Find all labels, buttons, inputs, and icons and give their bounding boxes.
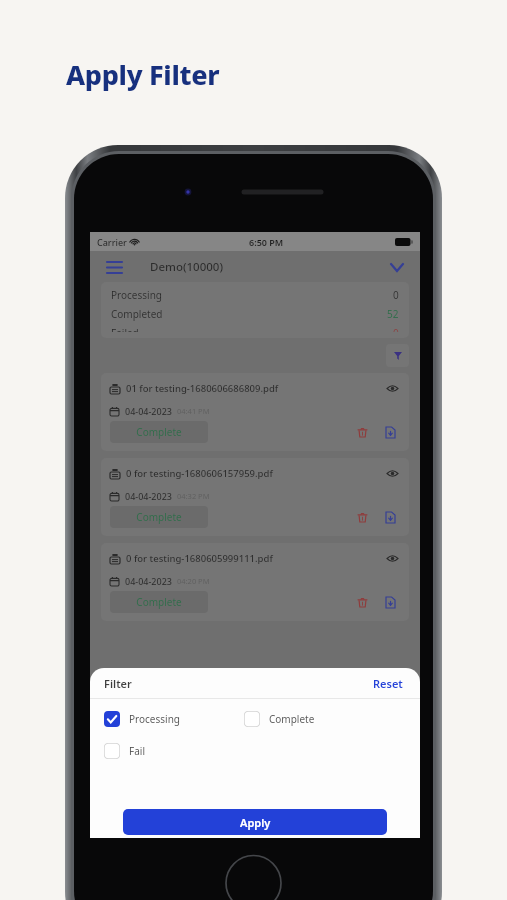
button[interactable]: Fail (104, 743, 214, 759)
staticText: Fail (129, 744, 145, 758)
staticText: Failed (111, 326, 139, 332)
staticText: Apply (240, 815, 271, 830)
button[interactable]: Complete (110, 421, 208, 443)
staticText: Reset (373, 676, 403, 691)
button[interactable]: Complete (110, 506, 208, 528)
button[interactable]: Reset (370, 673, 406, 694)
staticText: Demo(10000) (150, 259, 223, 275)
staticText: 0 (393, 288, 399, 302)
staticText: Carrier (97, 236, 127, 248)
button[interactable]: Delete (354, 424, 370, 440)
staticText: Apply Filter (66, 56, 220, 93)
button[interactable]: Apply (123, 809, 387, 835)
button[interactable]: Filter (386, 344, 409, 367)
staticText: 0 (393, 326, 399, 332)
staticText: 52 (387, 307, 399, 321)
button[interactable]: Open navigation menu (102, 255, 126, 279)
staticText: 04:32 PM (177, 491, 210, 501)
staticText: Complete (136, 425, 182, 439)
staticText: Processing (111, 288, 162, 302)
button[interactable]: Download document (382, 509, 398, 525)
button[interactable]: 0 for testing-1680606157959.pdf (101, 458, 409, 536)
button[interactable]: View document (385, 466, 400, 481)
staticText: Complete (269, 712, 315, 726)
staticText: Filter (104, 676, 132, 691)
staticText: 0 for testing-1680605999111.pdf (126, 552, 273, 565)
button[interactable]: Processing (104, 711, 214, 727)
staticText: 01 for testing-1680606686809.pdf (126, 382, 279, 395)
button[interactable]: Delete (354, 594, 370, 610)
staticText: Complete (136, 595, 182, 609)
staticText: Complete (136, 510, 182, 524)
staticText: 0 for testing-1680606157959.pdf (126, 467, 273, 480)
button[interactable]: View document (385, 381, 400, 396)
button[interactable]: Download document (382, 424, 398, 440)
button[interactable]: Change account (386, 256, 408, 278)
staticText: 04-04-2023 (125, 405, 172, 417)
staticText: Processing (129, 712, 180, 726)
staticText: 04-04-2023 (125, 575, 172, 587)
staticText: Completed (111, 307, 163, 321)
button[interactable]: Complete (244, 711, 354, 727)
staticText: 04:41 PM (177, 406, 210, 416)
staticText: 04-04-2023 (125, 490, 172, 502)
staticText: 04:20 PM (177, 576, 210, 586)
button[interactable]: View document (385, 551, 400, 566)
button[interactable]: Delete (354, 509, 370, 525)
button[interactable]: Complete (110, 591, 208, 613)
button[interactable]: 0 for testing-1680605999111.pdf (101, 543, 409, 621)
staticText: 6:50 PM (249, 236, 284, 248)
button[interactable]: Download document (382, 594, 398, 610)
button[interactable]: 01 for testing-1680606686809.pdf (101, 373, 409, 451)
